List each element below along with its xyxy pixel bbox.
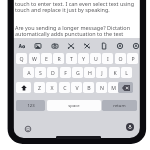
- button[interactable]: X: [46, 82, 57, 93]
- button[interactable]: K: [109, 67, 120, 78]
- button[interactable]: Effects: [82, 41, 92, 51]
- staticText: M: [111, 84, 116, 91]
- button[interactable]: Y: [78, 53, 89, 64]
- button[interactable]: Z: [34, 82, 45, 93]
- button[interactable]: P: [127, 53, 138, 64]
- button[interactable]: return: [102, 100, 137, 111]
- staticText: N: [100, 84, 104, 91]
- staticText: J: [101, 69, 103, 76]
- button[interactable]: F: [60, 67, 71, 78]
- button[interactable]: Q: [16, 53, 27, 64]
- button[interactable]: Camera: [50, 41, 60, 51]
- staticText: Q: [19, 55, 24, 62]
- button[interactable]: R: [53, 53, 64, 64]
- staticText: Y: [82, 55, 85, 62]
- button[interactable]: Emoji: [23, 124, 32, 133]
- staticText: E: [45, 55, 48, 62]
- button[interactable]: Text format: [17, 41, 27, 51]
- button[interactable]: S: [35, 67, 46, 78]
- button[interactable]: W: [29, 53, 40, 64]
- button[interactable]: More: [131, 41, 141, 51]
- button[interactable]: M: [108, 82, 119, 93]
- staticText: L: [125, 69, 128, 76]
- staticText: U: [94, 55, 98, 62]
- button[interactable]: O: [115, 53, 126, 64]
- button[interactable]: 123: [16, 100, 45, 111]
- button[interactable]: Delete: [118, 82, 133, 93]
- staticText: W: [32, 55, 37, 62]
- staticText: S: [39, 69, 42, 76]
- button[interactable]: B: [83, 82, 94, 93]
- staticText: G: [76, 69, 80, 76]
- staticText: A: [27, 69, 31, 76]
- staticText: 123: [27, 103, 35, 109]
- staticText: touch to enter text. I can even select t…: [15, 0, 135, 14]
- staticText: C: [63, 84, 67, 91]
- button[interactable]: I: [102, 53, 113, 64]
- button[interactable]: N: [96, 82, 107, 93]
- staticText: B: [87, 84, 91, 91]
- button[interactable]: Audio: [115, 41, 125, 51]
- staticText: X: [50, 84, 54, 91]
- staticText: T: [70, 55, 73, 62]
- staticText: Are you sending a longer message? Dictat…: [15, 24, 135, 38]
- staticText: H: [88, 69, 92, 76]
- staticText: Z: [38, 84, 41, 91]
- staticText: D: [51, 69, 55, 76]
- staticText: R: [57, 55, 61, 62]
- button[interactable]: G: [72, 67, 83, 78]
- staticText: O: [118, 55, 123, 62]
- button[interactable]: T: [66, 53, 77, 64]
- button[interactable]: V: [71, 82, 82, 93]
- staticText: F: [64, 69, 67, 76]
- staticText: I: [107, 55, 109, 62]
- button[interactable]: E: [41, 53, 52, 64]
- staticText: P: [131, 55, 135, 62]
- button[interactable]: C: [59, 82, 70, 93]
- staticText: return: [113, 103, 126, 109]
- button[interactable]: D: [47, 67, 58, 78]
- button[interactable]: A: [23, 67, 34, 78]
- staticText: V: [75, 84, 79, 91]
- button[interactable]: Dictation: [126, 123, 134, 131]
- button[interactable]: J: [96, 67, 107, 78]
- staticText: K: [113, 69, 117, 76]
- button[interactable]: U: [90, 53, 101, 64]
- button[interactable]: Document: [99, 41, 109, 51]
- staticText: space: [68, 103, 80, 109]
- button[interactable]: Apps: [66, 41, 76, 51]
- button[interactable]: space: [47, 100, 101, 111]
- button[interactable]: Shift: [16, 82, 31, 93]
- button[interactable]: Photos: [33, 41, 43, 51]
- button[interactable]: H: [84, 67, 95, 78]
- button[interactable]: L: [121, 67, 132, 78]
